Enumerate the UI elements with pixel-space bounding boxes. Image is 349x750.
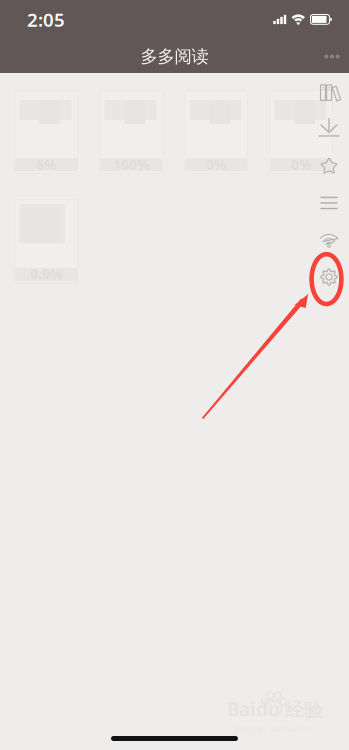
button[interactable]: 0.9% [15, 199, 77, 283]
staticText: 0% [206, 156, 226, 173]
button[interactable]: Menu [312, 186, 346, 220]
staticText: 100% [113, 156, 149, 173]
staticText: Baidu 经验 [227, 697, 323, 722]
button[interactable]: Wi-Fi transfer [312, 223, 346, 257]
button[interactable]: Downloads [312, 110, 346, 144]
button[interactable]: Bookshelf [312, 76, 346, 110]
button[interactable]: More options [315, 41, 349, 71]
button[interactable]: 100% [100, 90, 162, 173]
staticText: 多多阅读 [140, 46, 208, 67]
button[interactable]: 6% [15, 90, 77, 173]
button[interactable]: 0% [185, 90, 247, 173]
button[interactable]: Favorites [312, 149, 346, 183]
staticText: 2:05 [27, 7, 65, 32]
staticText: 0% [291, 156, 311, 173]
staticText: 0.9% [30, 265, 62, 283]
button[interactable]: 0% [270, 90, 332, 173]
button[interactable]: Settings [312, 260, 346, 294]
staticText: 6% [36, 156, 56, 173]
